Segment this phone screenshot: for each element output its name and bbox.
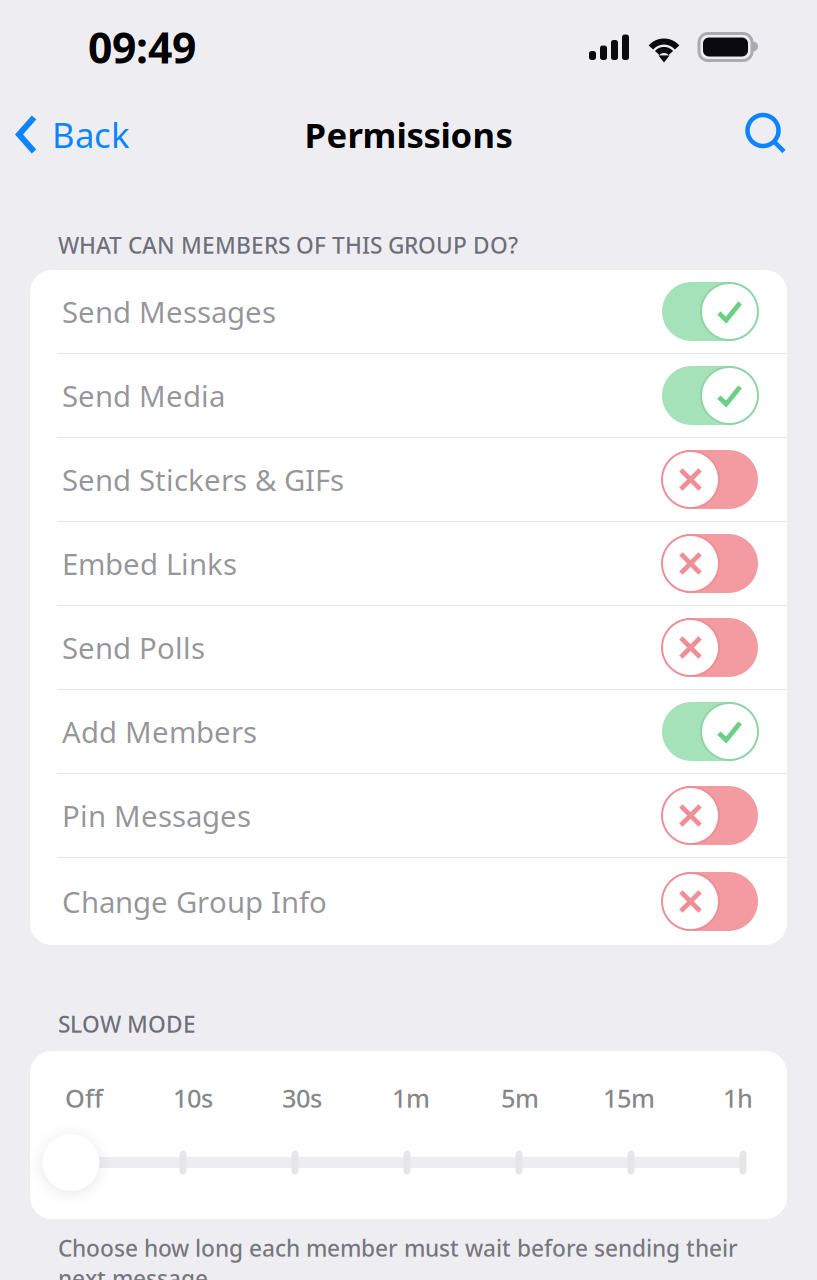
staticText: Permissions (304, 111, 512, 157)
button[interactable]: Send Messages (30, 270, 787, 354)
button[interactable]: Send Stickers & GIFs (30, 438, 787, 522)
button[interactable]: Send Polls (30, 606, 787, 690)
button[interactable]: Add Members (30, 690, 787, 774)
staticText: 1m (392, 1081, 430, 1115)
button[interactable]: Search (732, 105, 802, 163)
staticText: Send Media (62, 376, 225, 415)
staticText: 5m (501, 1081, 539, 1115)
button[interactable]: Send Media (30, 354, 787, 438)
staticText: 10s (173, 1081, 213, 1115)
staticText: Send Stickers & GIFs (62, 460, 344, 499)
staticText: 09:49 (88, 19, 196, 75)
staticText: Off (65, 1081, 103, 1115)
staticText: Send Messages (62, 292, 276, 331)
button[interactable]: Change Group Info (30, 858, 787, 945)
staticText: Change Group Info (62, 882, 327, 921)
staticText: SLOW MODE (58, 1009, 196, 1039)
staticText: Back (52, 111, 130, 157)
staticText: Choose how long each member must wait be… (58, 1233, 738, 1280)
button[interactable]: Pin Messages (30, 774, 787, 858)
staticText: Add Members (62, 712, 257, 751)
staticText: 15m (603, 1081, 655, 1115)
staticText: Embed Links (62, 544, 237, 583)
staticText: 1h (723, 1081, 753, 1115)
staticText: 30s (282, 1081, 322, 1115)
staticText: WHAT CAN MEMBERS OF THIS GROUP DO? (58, 230, 518, 260)
button[interactable]: Embed Links (30, 522, 787, 606)
staticText: Send Polls (62, 628, 205, 667)
staticText: Pin Messages (62, 796, 251, 835)
button[interactable]: Back (0, 99, 146, 169)
